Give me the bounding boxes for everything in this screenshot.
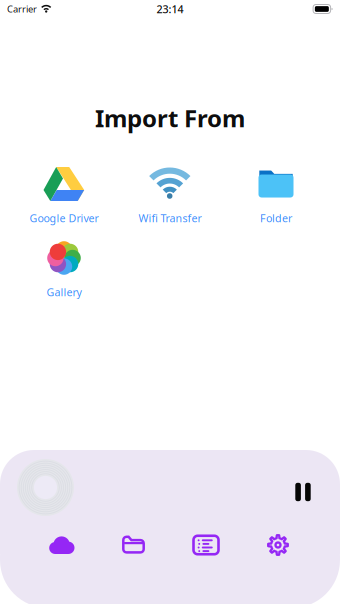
staticText: Wifi Transfer xyxy=(138,211,201,225)
staticText: 23:14 xyxy=(156,2,183,16)
button[interactable]: Cloud xyxy=(26,528,98,562)
button[interactable]: Pause xyxy=(283,475,323,509)
staticText: Import From xyxy=(95,102,245,134)
button[interactable]: Files xyxy=(98,528,170,562)
staticText: Gallery xyxy=(46,285,81,299)
staticText: Carrier xyxy=(7,3,37,15)
staticText: Google Driver xyxy=(29,211,98,225)
staticText: Folder xyxy=(260,211,292,225)
button[interactable]: Google Driver xyxy=(11,164,117,226)
button[interactable]: Folder xyxy=(223,164,329,226)
button[interactable]: Gallery xyxy=(11,238,117,300)
button[interactable]: Settings xyxy=(242,528,314,562)
button[interactable]: Wifi Transfer xyxy=(117,164,223,226)
button[interactable]: Playlist xyxy=(170,528,242,562)
